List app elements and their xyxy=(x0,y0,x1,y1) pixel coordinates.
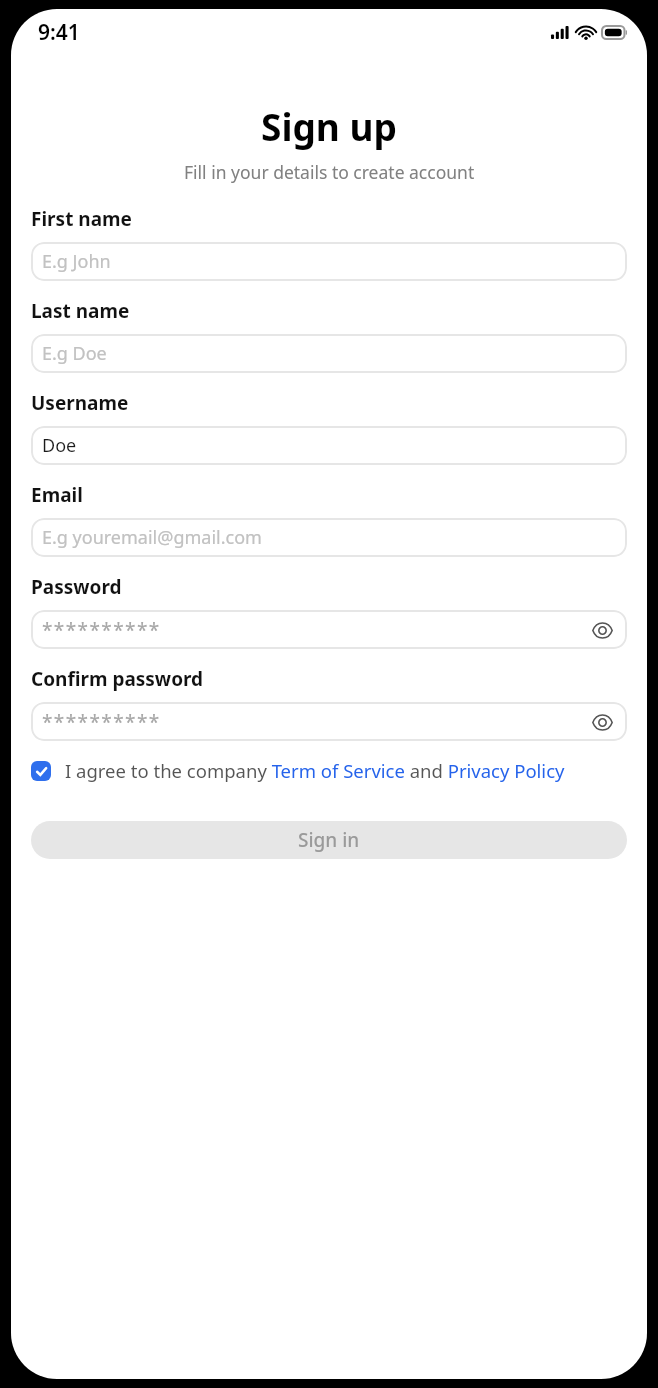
staticText: E.g John xyxy=(42,249,111,274)
staticText: Sign up xyxy=(261,101,397,151)
button[interactable]: Doe xyxy=(31,426,627,465)
staticText: Sign in xyxy=(298,827,360,853)
button[interactable]: Show password xyxy=(588,708,616,736)
staticText: E.g Doe xyxy=(42,341,107,366)
staticText: Doe xyxy=(42,433,77,458)
staticText: Last name xyxy=(31,298,130,324)
staticText: ********** xyxy=(42,709,161,735)
button[interactable]: ********** xyxy=(31,610,627,649)
staticText: I agree to the company Term of Service a… xyxy=(65,758,565,783)
staticText: ********** xyxy=(42,617,161,643)
staticText: 9:41 xyxy=(38,18,80,47)
button[interactable]: E.g John xyxy=(31,242,627,281)
staticText: Confirm password xyxy=(31,666,204,692)
staticText: First name xyxy=(31,206,132,232)
button[interactable]: E.g Doe xyxy=(31,334,627,373)
other: Agree to terms xyxy=(31,761,51,781)
button[interactable]: Sign in xyxy=(31,821,627,859)
button[interactable]: ********** xyxy=(31,702,627,741)
staticText: Password xyxy=(31,574,122,600)
button[interactable]: Agree to terms xyxy=(31,758,627,783)
staticText: Username xyxy=(31,390,129,416)
button[interactable]: Show password xyxy=(588,616,616,644)
staticText: Fill in your details to create account xyxy=(184,160,475,184)
staticText: Email xyxy=(31,482,83,508)
button[interactable]: E.g youremail@gmail.com xyxy=(31,518,627,557)
staticText: E.g youremail@gmail.com xyxy=(42,525,262,550)
